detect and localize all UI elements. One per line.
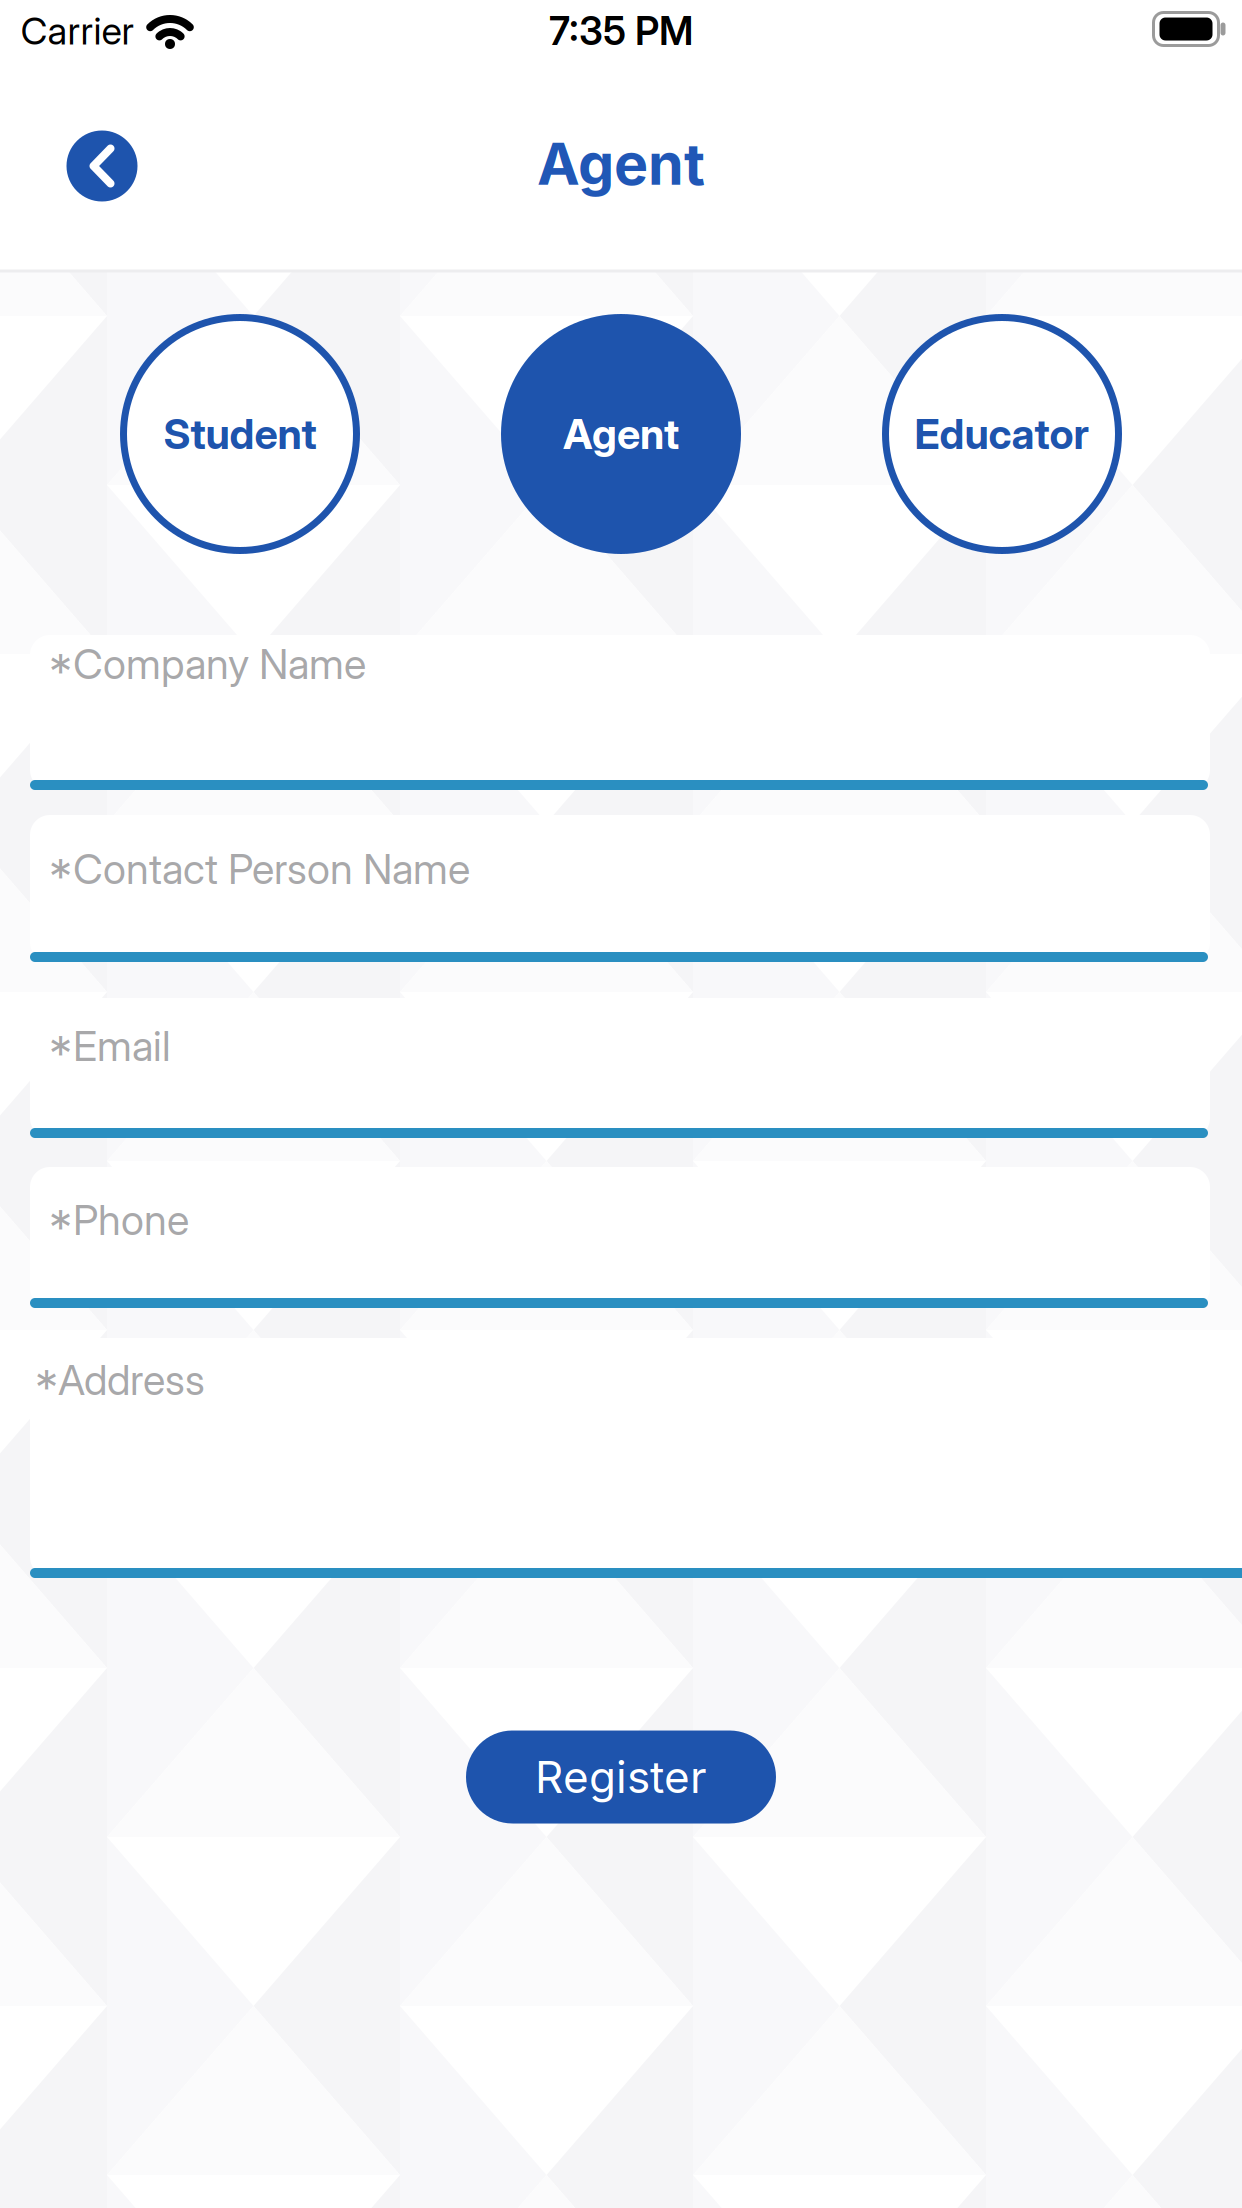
staticText: Agent [563,410,679,458]
button[interactable]: *Phone [30,1167,1210,1308]
staticText: Carrier [20,9,133,53]
button[interactable]: Back [66,130,137,201]
button[interactable]: *Company Name [30,635,1210,790]
staticText: *Company Name [48,640,366,688]
button[interactable]: Educator [882,314,1122,554]
button[interactable]: Register [466,1730,776,1823]
staticText: *Contact Person Name [48,845,470,893]
staticText: Student [163,410,316,458]
staticText: Agent [537,130,705,198]
staticText: *Phone [48,1196,189,1244]
button[interactable]: Agent [501,314,741,554]
button[interactable]: *Email [30,998,1210,1138]
staticText: Educator [914,410,1089,458]
staticText: 7:35 PM [549,8,693,54]
staticText: Register [535,1751,707,1803]
button[interactable]: Student [120,314,360,554]
button[interactable]: *Contact Person Name [30,815,1210,962]
staticText: *Address [34,1356,205,1404]
staticText: *Email [48,1022,171,1070]
button[interactable]: *Address [30,1338,1242,1577]
